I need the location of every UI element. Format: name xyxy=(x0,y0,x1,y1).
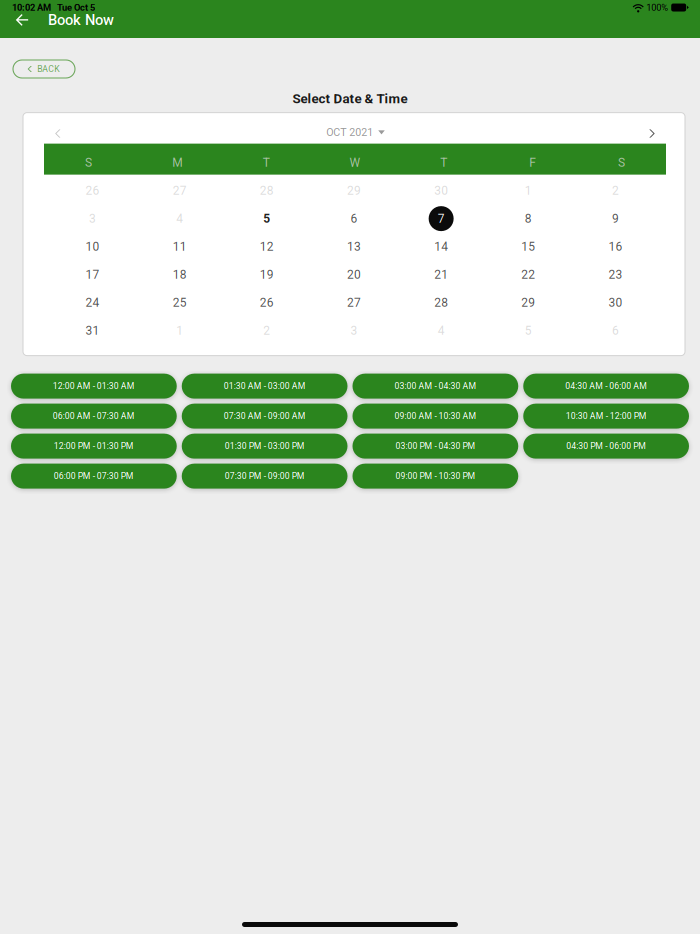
staticText: 8 xyxy=(525,212,532,226)
button[interactable]: 04:30 AM - 06:00 AM xyxy=(523,374,689,399)
button[interactable]: 28 xyxy=(223,177,310,205)
staticText: 27 xyxy=(347,296,361,310)
staticText: T xyxy=(263,156,270,170)
button[interactable]: 17 xyxy=(49,261,136,289)
staticText: 28 xyxy=(260,184,274,198)
button[interactable]: Previous month xyxy=(48,114,70,138)
staticText: 100% xyxy=(646,2,668,13)
button[interactable]: 19 xyxy=(223,261,310,289)
button[interactable]: OCT 2021 xyxy=(326,113,385,139)
button[interactable]: 10 xyxy=(49,233,136,261)
staticText: 14 xyxy=(434,240,448,254)
staticText: 29 xyxy=(347,184,361,198)
staticText: 24 xyxy=(86,296,100,310)
staticText: T xyxy=(440,156,447,170)
button[interactable]: 26 xyxy=(223,289,310,317)
button[interactable]: 06:00 PM - 07:30 PM xyxy=(11,464,177,489)
button[interactable]: 30 xyxy=(572,289,659,317)
staticText: 12:00 AM - 01:30 AM xyxy=(53,381,135,391)
button[interactable]: 20 xyxy=(310,261,397,289)
staticText: 18 xyxy=(173,268,187,282)
button[interactable]: 28 xyxy=(398,289,485,317)
button[interactable]: 11 xyxy=(136,233,223,261)
staticText: 10:02 AM xyxy=(12,2,51,13)
staticText: 23 xyxy=(608,268,622,282)
staticText: 10 xyxy=(86,240,100,254)
staticText: BACK xyxy=(37,64,59,74)
staticText: 7 xyxy=(438,212,445,226)
button[interactable]: 25 xyxy=(136,289,223,317)
staticText: F xyxy=(529,156,536,170)
staticText: 04:30 PM - 06:00 PM xyxy=(566,441,646,451)
button[interactable]: 8 xyxy=(485,205,572,233)
staticText: M xyxy=(172,156,182,170)
button[interactable]: BACK xyxy=(13,60,75,78)
button[interactable]: 27 xyxy=(310,289,397,317)
staticText: 1 xyxy=(525,184,532,198)
staticText: 3 xyxy=(350,324,357,338)
button[interactable]: 14 xyxy=(398,233,485,261)
button[interactable]: 24 xyxy=(49,289,136,317)
button[interactable]: 15 xyxy=(485,233,572,261)
staticText: 20 xyxy=(347,268,361,282)
button[interactable]: 16 xyxy=(572,233,659,261)
button[interactable]: 01:30 PM - 03:00 PM xyxy=(182,434,348,459)
staticText: 25 xyxy=(173,296,187,310)
button[interactable]: Next month xyxy=(641,114,663,138)
button[interactable]: 12:00 AM - 01:30 AM xyxy=(11,374,177,399)
button[interactable]: 01:30 AM - 03:00 AM xyxy=(182,374,348,399)
button[interactable]: 07:30 AM - 09:00 AM xyxy=(182,404,348,429)
button[interactable]: 12:00 PM - 01:30 PM xyxy=(11,434,177,459)
button[interactable]: 06:00 AM - 07:30 AM xyxy=(11,404,177,429)
button[interactable]: 29 xyxy=(310,177,397,205)
staticText: 12:00 PM - 01:30 PM xyxy=(54,441,134,451)
staticText: 9 xyxy=(612,212,619,226)
button[interactable]: 10:30 AM - 12:00 PM xyxy=(523,404,689,429)
button[interactable]: 07:30 PM - 09:00 PM xyxy=(182,464,348,489)
staticText: 04:30 AM - 06:00 AM xyxy=(565,381,647,391)
button[interactable]: 9 xyxy=(572,205,659,233)
button[interactable]: 30 xyxy=(398,177,485,205)
button[interactable]: 31 xyxy=(49,317,136,345)
staticText: 26 xyxy=(86,184,100,198)
button[interactable]: 26 xyxy=(49,177,136,205)
button[interactable]: 18 xyxy=(136,261,223,289)
staticText: 07:30 AM - 09:00 AM xyxy=(224,411,306,421)
button[interactable]: 23 xyxy=(572,261,659,289)
button[interactable]: 04:30 PM - 06:00 PM xyxy=(523,434,689,459)
staticText: 03:00 PM - 04:30 PM xyxy=(395,441,475,451)
staticText: 28 xyxy=(434,296,448,310)
button[interactable]: Back xyxy=(10,10,34,29)
button[interactable]: 5 xyxy=(223,205,310,233)
button[interactable]: 03:00 PM - 04:30 PM xyxy=(352,434,518,459)
staticText: 30 xyxy=(608,296,622,310)
button[interactable]: 22 xyxy=(485,261,572,289)
staticText: 2 xyxy=(612,184,619,198)
button[interactable]: 7 xyxy=(398,205,485,233)
button[interactable]: 09:00 PM - 10:30 PM xyxy=(352,464,518,489)
staticText: 09:00 PM - 10:30 PM xyxy=(395,471,475,481)
button[interactable]: 09:00 AM - 10:30 AM xyxy=(352,404,518,429)
staticText: 01:30 AM - 03:00 AM xyxy=(224,381,306,391)
button[interactable]: 6 xyxy=(310,205,397,233)
staticText: 27 xyxy=(173,184,187,198)
staticText: 5 xyxy=(263,212,270,226)
button[interactable]: 12 xyxy=(223,233,310,261)
staticText: 4 xyxy=(438,324,445,338)
button[interactable]: 21 xyxy=(398,261,485,289)
button[interactable]: 03:00 AM - 04:30 AM xyxy=(352,374,518,399)
button[interactable]: 27 xyxy=(136,177,223,205)
button[interactable]: 13 xyxy=(310,233,397,261)
staticText: 21 xyxy=(434,268,448,282)
button[interactable]: 29 xyxy=(485,289,572,317)
